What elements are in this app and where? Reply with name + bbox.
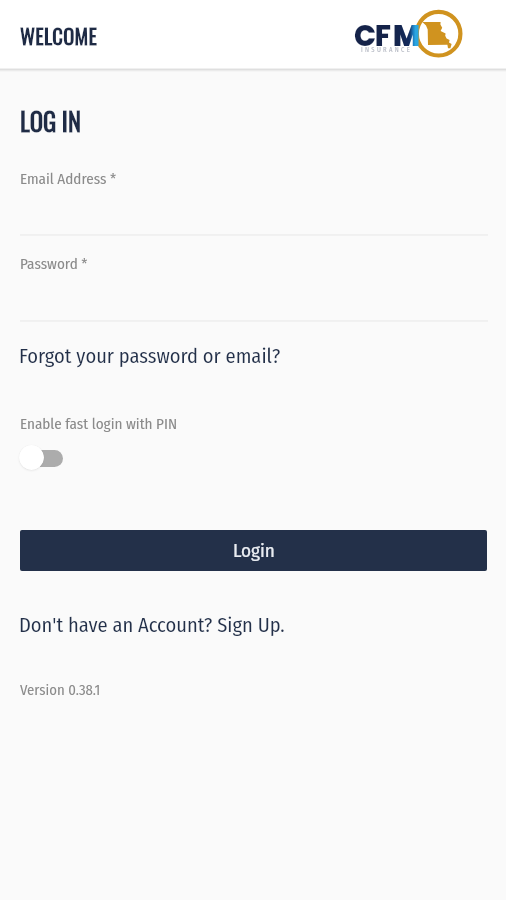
button[interactable]: Forgot your password or email? xyxy=(19,344,281,369)
staticText: INSURANCE xyxy=(361,46,413,54)
staticText: Email Address * xyxy=(20,170,117,188)
button[interactable]: Login xyxy=(20,530,487,571)
staticText: WELCOME xyxy=(20,20,98,51)
staticText: Password * xyxy=(20,255,88,273)
button[interactable]: Don't have an Account? Sign Up. xyxy=(19,613,285,638)
staticText: Version 0.38.1 xyxy=(20,681,101,699)
button[interactable]: WELCOME xyxy=(0,0,506,69)
button[interactable]: Password * xyxy=(20,255,488,322)
button[interactable]: Enable fast login with PIN xyxy=(18,444,68,472)
button[interactable]: Email Address * xyxy=(20,170,488,236)
staticText: LOG IN xyxy=(20,103,81,140)
staticText: Forgot your password or email? xyxy=(19,344,281,369)
staticText: M xyxy=(393,16,421,57)
staticText: CF xyxy=(354,16,390,57)
staticText: Don't have an Account? Sign Up. xyxy=(19,613,285,638)
staticText: Login xyxy=(233,539,275,562)
staticText: Enable fast login with PIN xyxy=(20,415,178,433)
